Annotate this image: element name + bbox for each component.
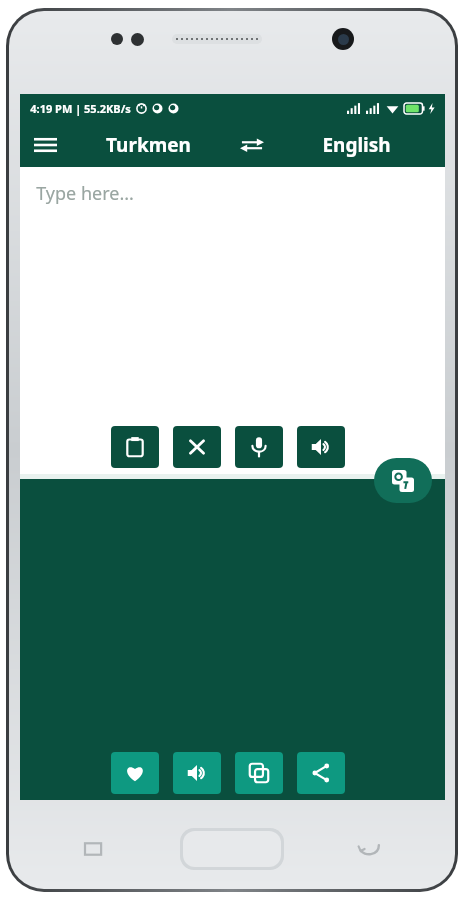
- staticText: 4:19 PM | 55.2KB/s: [30, 101, 131, 116]
- button[interactable]: Swap languages: [226, 122, 278, 167]
- staticText: Turkmen: [106, 132, 191, 158]
- button[interactable]: Speak: [235, 426, 283, 468]
- button[interactable]: Copy: [235, 752, 283, 794]
- button[interactable]: Clear: [173, 426, 221, 468]
- button[interactable]: Translate: [374, 458, 432, 503]
- button[interactable]: Type here...: [36, 181, 445, 206]
- staticText: Type here...: [36, 181, 134, 206]
- button[interactable]: Listen: [173, 752, 221, 794]
- staticText: English: [322, 132, 391, 158]
- button[interactable]: Share: [297, 752, 345, 794]
- button[interactable]: English: [278, 122, 435, 167]
- button[interactable]: Turkmen: [70, 122, 226, 167]
- button[interactable]: Favorite: [111, 752, 159, 794]
- button[interactable]: Paste: [111, 426, 159, 468]
- button[interactable]: Listen: [297, 426, 345, 468]
- button[interactable]: Menu: [20, 122, 70, 167]
